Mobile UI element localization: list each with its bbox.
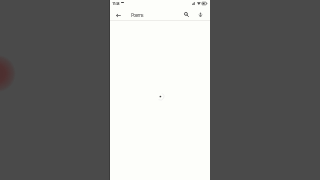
button[interactable]: Search <box>182 10 190 18</box>
staticText: Poems <box>131 12 143 19</box>
button[interactable]: Back <box>114 11 122 19</box>
button[interactable]: Voice search <box>196 10 204 18</box>
staticText: 11:34 <box>112 1 119 7</box>
